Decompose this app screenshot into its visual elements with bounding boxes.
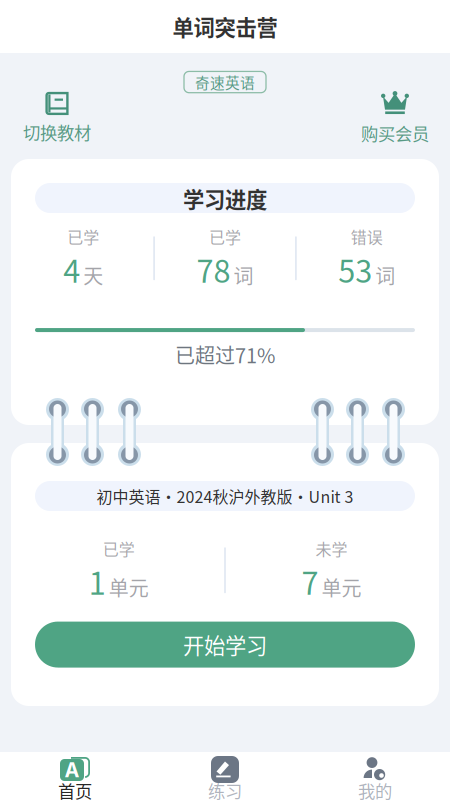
button[interactable]: 练习 <box>150 754 300 798</box>
staticText: 7 <box>301 559 318 604</box>
button[interactable]: 购买会员 <box>340 90 450 146</box>
staticText: 已学 <box>67 225 99 248</box>
staticText: 天 <box>83 261 103 290</box>
button[interactable]: A <box>0 754 150 798</box>
button[interactable]: 切换教材 <box>0 91 114 145</box>
staticText: 初中英语·2024秋沪外教版·Unit 3 <box>96 484 353 508</box>
staticText: 单元 <box>321 573 361 602</box>
staticText: 词 <box>233 261 253 290</box>
staticText: 已超过71% <box>175 340 275 369</box>
staticText: 我的 <box>358 778 392 800</box>
staticText: A <box>64 758 79 782</box>
staticText: 未学 <box>315 537 347 560</box>
staticText: 开始学习 <box>183 629 267 660</box>
staticText: 词 <box>375 261 395 290</box>
staticText: 1 <box>89 559 106 604</box>
staticText: 78 <box>196 247 230 292</box>
staticText: 购买会员 <box>361 120 429 146</box>
staticText: 练习 <box>208 778 242 800</box>
button[interactable]: 我的 <box>300 754 450 798</box>
button[interactable]: 开始学习 <box>35 622 415 668</box>
staticText: 53 <box>338 247 372 292</box>
staticText: 单词突击营 <box>172 11 277 42</box>
staticText: 奇速英语 <box>195 71 255 93</box>
staticText: 首页 <box>58 778 92 800</box>
staticText: 错误 <box>351 225 383 248</box>
staticText: 单元 <box>109 573 149 602</box>
button[interactable]: 奇速英语 <box>184 71 266 93</box>
staticText: 已学 <box>103 537 135 560</box>
staticText: 切换教材 <box>23 119 91 145</box>
staticText: 学习进度 <box>183 183 267 213</box>
staticText: 已学 <box>209 225 241 248</box>
staticText: 4 <box>63 247 80 292</box>
